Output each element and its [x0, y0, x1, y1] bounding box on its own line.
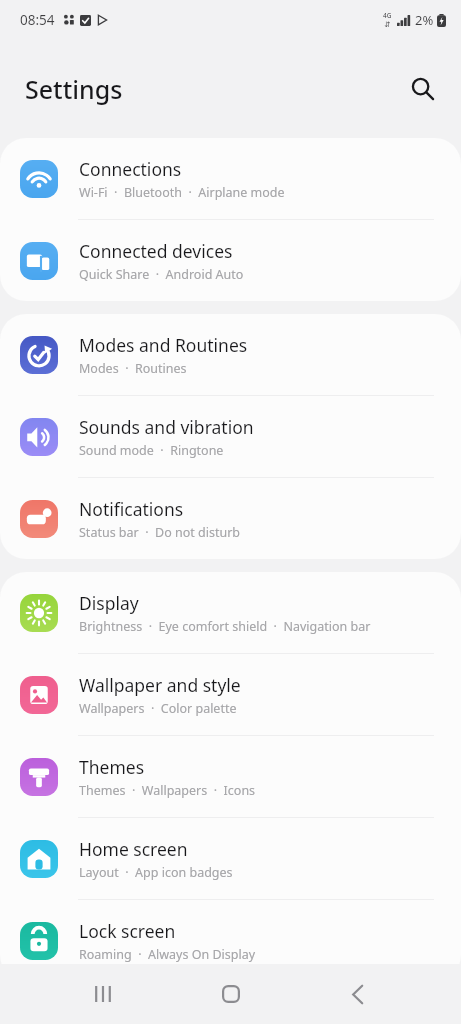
staticText: Brightness · Eye comfort shield · Naviga… — [79, 618, 371, 635]
button[interactable]: Lock screen — [0, 900, 461, 981]
button[interactable]: Connections — [0, 138, 461, 219]
staticText: Wi-Fi · Bluetooth · Airplane mode — [79, 184, 285, 201]
button[interactable]: Display — [0, 572, 461, 653]
staticText: Settings — [25, 72, 123, 106]
staticText: 08:54 — [20, 11, 55, 29]
staticText: ⇵ — [384, 20, 391, 29]
button[interactable]: Home screen — [0, 818, 461, 899]
staticText: Sounds and vibration — [79, 415, 254, 439]
button[interactable]: Search — [402, 68, 444, 110]
staticText: Modes · Routines — [79, 360, 187, 377]
staticText: Home screen — [79, 837, 188, 861]
staticText: Modes and Routines — [79, 333, 248, 357]
staticText: Connections — [79, 157, 182, 181]
staticText: Connected devices — [79, 239, 233, 263]
staticText: Themes — [79, 755, 145, 779]
button[interactable]: Connected devices — [0, 220, 461, 301]
staticText: 2% — [415, 11, 434, 29]
staticText: Status bar · Do not disturb — [79, 524, 241, 541]
button[interactable]: Notifications — [0, 478, 461, 559]
staticText: Wallpapers · Color palette — [79, 700, 237, 717]
staticText: Themes · Wallpapers · Icons — [79, 782, 256, 799]
staticText: Sound mode · Ringtone — [79, 442, 224, 459]
staticText: Lock screen — [79, 919, 176, 943]
button[interactable]: Recent apps — [79, 970, 127, 1018]
button[interactable]: Home — [207, 970, 255, 1018]
button[interactable]: Sounds and vibration — [0, 396, 461, 477]
staticText: Wallpaper and style — [79, 673, 241, 697]
staticText: Quick Share · Android Auto — [79, 266, 244, 283]
staticText: Notifications — [79, 497, 184, 521]
staticText: Roaming · Always On Display — [79, 946, 256, 963]
button[interactable]: Wallpaper and style — [0, 654, 461, 735]
staticText: Display — [79, 591, 139, 615]
button[interactable]: Back — [334, 970, 382, 1018]
button[interactable]: Modes and Routines — [0, 314, 461, 395]
staticText: Layout · App icon badges — [79, 864, 233, 881]
button[interactable]: Themes — [0, 736, 461, 817]
staticText: 4G — [383, 11, 392, 20]
